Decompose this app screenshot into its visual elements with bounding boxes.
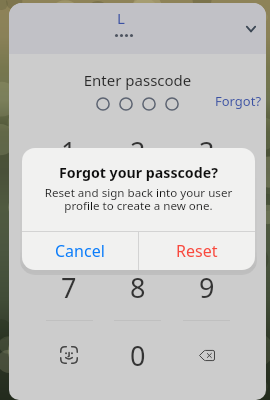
button[interactable]: 7 — [35, 253, 103, 321]
button[interactable]: 0 — [103, 321, 172, 389]
staticText: L — [117, 8, 125, 28]
button[interactable]: Delete — [172, 321, 241, 389]
button[interactable]: 1 — [35, 117, 103, 185]
button[interactable]: 8 — [103, 253, 172, 321]
staticText: Forgot? — [215, 92, 262, 110]
button[interactable]: Cancel — [22, 232, 138, 270]
staticText: 7 — [61, 269, 77, 306]
staticText: 9 — [199, 269, 215, 306]
staticText: 0 — [130, 337, 146, 374]
staticText: 5 — [130, 201, 146, 238]
staticText: 2 — [130, 133, 146, 170]
button[interactable]: Forgot? — [212, 89, 265, 113]
staticText: 4 — [61, 201, 77, 238]
button[interactable]: 6 — [172, 185, 241, 253]
staticText: Forgot your passcode? — [22, 163, 255, 182]
staticText: 8 — [130, 269, 146, 306]
staticText: 1 — [61, 133, 77, 170]
button[interactable]: 2 — [103, 117, 172, 185]
staticText: Enter passcode — [9, 70, 266, 90]
button[interactable]: 3 — [172, 117, 241, 185]
button[interactable]: Face ID — [35, 321, 103, 389]
staticText: 3 — [199, 133, 215, 170]
button[interactable]: 5 — [103, 185, 172, 253]
staticText: Reset — [176, 240, 218, 262]
button[interactable]: Reset — [139, 232, 255, 270]
button[interactable]: Collapse — [239, 17, 263, 41]
staticText: Reset and sign back into your user profi… — [38, 185, 239, 214]
button[interactable]: 9 — [172, 253, 241, 321]
staticText: 6 — [199, 201, 215, 238]
button[interactable]: 4 — [35, 185, 103, 253]
staticText: Cancel — [55, 240, 105, 262]
